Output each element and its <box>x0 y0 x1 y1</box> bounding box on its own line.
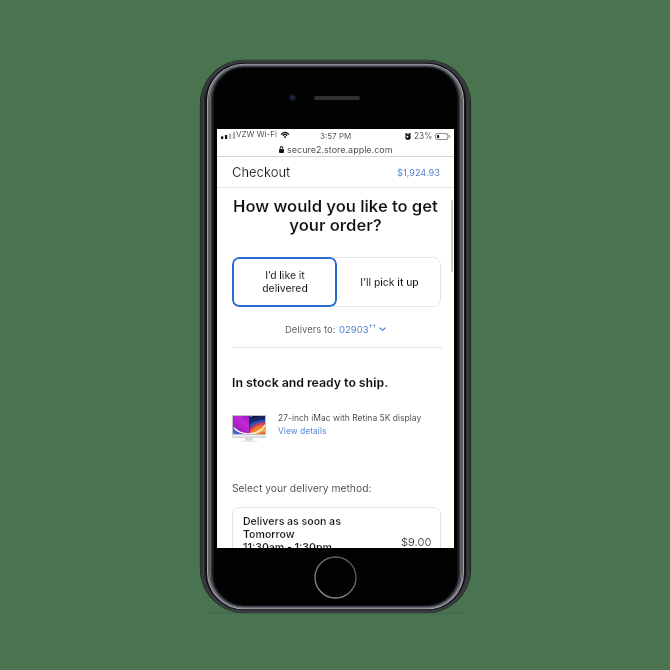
button[interactable]: Delivers to: <box>217 323 454 335</box>
staticText: How would you like to get your order? <box>223 196 448 235</box>
button[interactable]: Delivers as soon as Tomorrow 11:30am - 1… <box>232 507 441 548</box>
staticText: 23% <box>414 131 433 141</box>
staticText: 27-inch iMac with Retina 5K display <box>278 413 422 423</box>
button[interactable]: View details <box>278 426 327 436</box>
staticText: Delivers as soon as Tomorrow 11:30am - 1… <box>243 515 341 548</box>
staticText: I’ll pick it up <box>360 276 419 288</box>
button[interactable]: I’ll pick it up <box>337 257 441 307</box>
staticText: Delivers to: <box>285 324 339 335</box>
staticText: $9.00 <box>401 535 432 548</box>
staticText: †† <box>369 323 376 331</box>
staticText: 02903 <box>339 324 369 335</box>
staticText: VZW Wi-Fi <box>236 129 277 139</box>
staticText: In stock and ready to ship. <box>232 375 389 390</box>
staticText: secure2.store.apple.com <box>287 144 393 155</box>
button[interactable]: I’d like it delivered <box>232 257 337 307</box>
staticText: Select your delivery method: <box>232 482 372 494</box>
button[interactable]: $1,924.93 <box>397 167 440 178</box>
staticText: I’d like it delivered <box>262 269 308 295</box>
staticText: Checkout <box>232 165 291 181</box>
staticText: 3:57 PM <box>320 131 352 141</box>
